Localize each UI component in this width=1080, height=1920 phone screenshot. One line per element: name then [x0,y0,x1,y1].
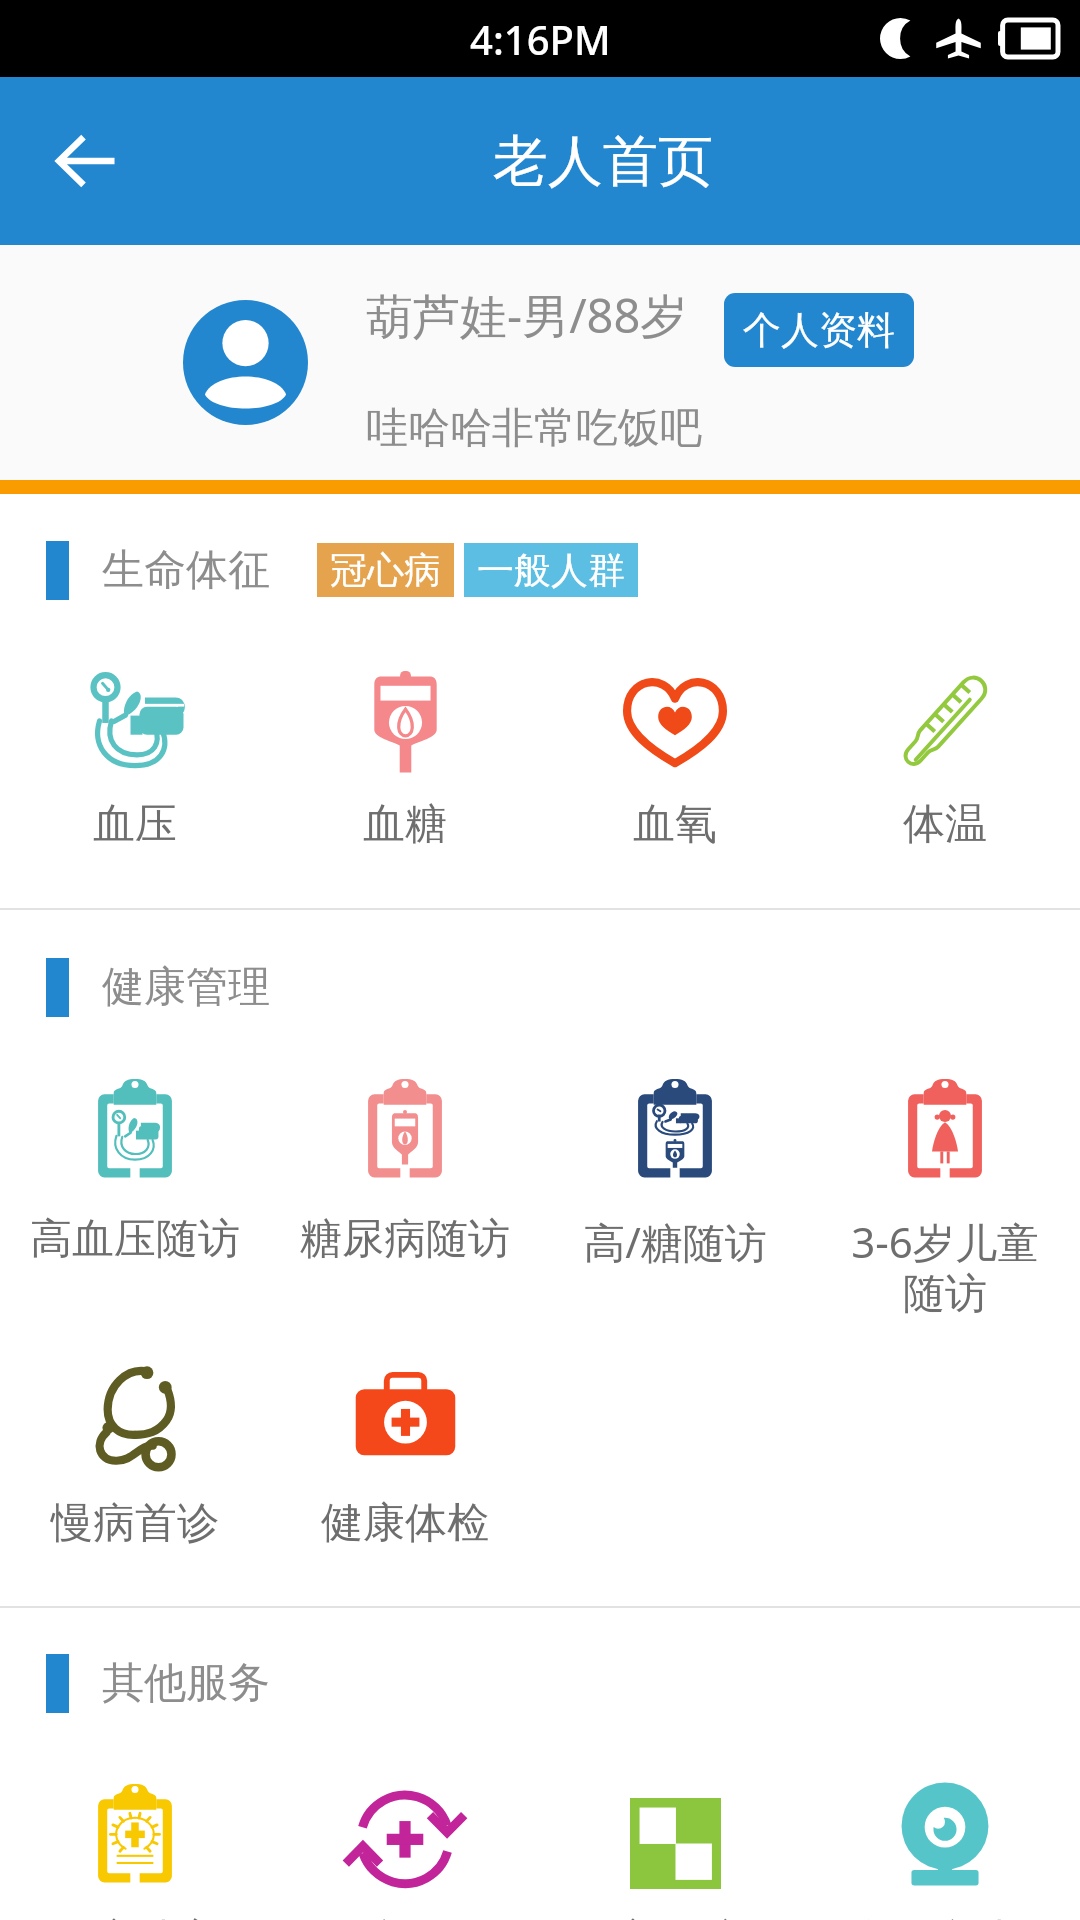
button[interactable]: 高/糖随访 [540,1060,810,1340]
staticText: 慢病首诊 [20,1497,250,1550]
button[interactable]: 血压 [0,650,270,890]
button[interactable]: 健康体检 [270,1345,540,1575]
staticText: 健康档案 [20,1914,250,1920]
staticText: 体温 [830,798,1060,851]
staticText: 血压 [20,798,250,851]
button[interactable]: 高血压随访 [0,1060,270,1340]
button[interactable]: 冠心病 [317,543,454,597]
staticText: 高/糖随访 [560,1213,790,1270]
staticText: 生命体征 [102,544,270,597]
button[interactable]: 远程视频 [810,1765,1080,1920]
button[interactable]: 一般人群 [464,543,638,597]
button[interactable]: 慢病管理 [270,1765,540,1920]
staticText: 其他服务 [102,1657,270,1710]
staticText: 高血压随访 [20,1213,250,1266]
staticText: 3-6岁儿童随访 [845,1213,1045,1321]
button[interactable]: 3-6岁儿童随访 [810,1060,1080,1340]
button[interactable]: 血氧 [540,650,810,890]
staticText: 糖尿病随访 [290,1213,520,1266]
staticText: 4:16PM [470,12,611,66]
staticText: 老人首页 [493,127,713,196]
staticText: 远程视频 [830,1914,1060,1920]
staticText: 健康体检 [290,1497,520,1550]
button[interactable]: 个人资料 [724,293,914,367]
staticText: 健康管理 [102,961,270,1014]
button[interactable]: 体温 [810,650,1080,890]
button[interactable]: 慢病首诊 [0,1345,270,1575]
button[interactable]: Back [34,109,138,213]
staticText: 血糖 [290,798,520,851]
button[interactable]: 健康档案 [0,1765,270,1920]
staticText: 一般人群 [477,547,625,594]
staticText: 冠心病 [330,547,441,594]
staticText: 葫芦娃-男/88岁 [366,283,688,347]
button[interactable]: 健康二维码 [540,1765,810,1920]
staticText: 哇哈哈非常吃饭吧 [366,402,702,455]
staticText: 个人资料 [743,306,895,354]
staticText: 健康二维码 [560,1914,790,1920]
staticText: 血氧 [560,798,790,851]
button[interactable]: 糖尿病随访 [270,1060,540,1340]
button[interactable]: 血糖 [270,650,540,890]
